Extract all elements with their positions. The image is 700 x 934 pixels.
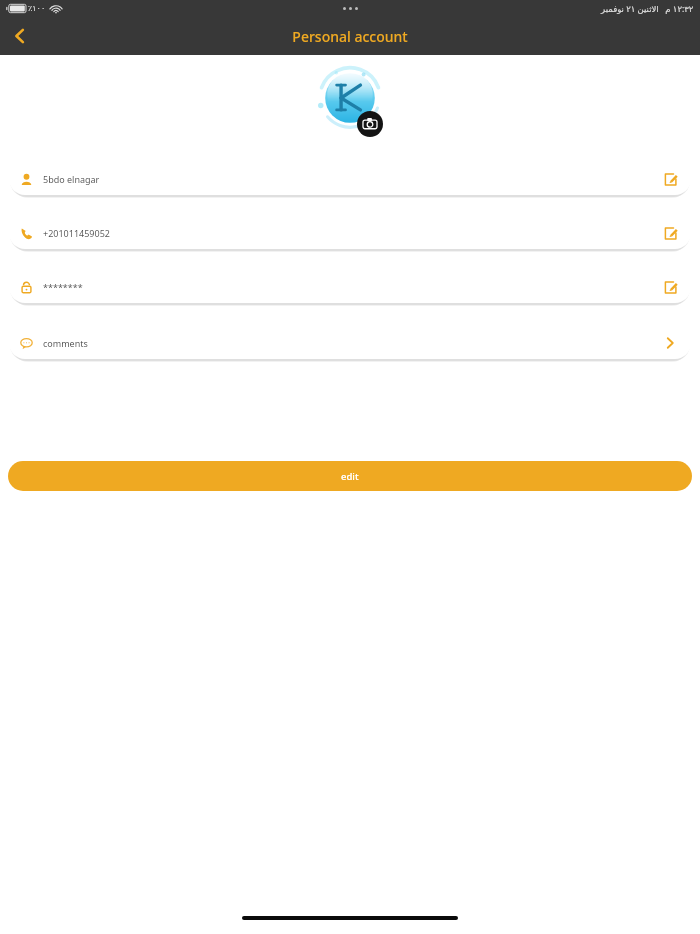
button[interactable]: Change profile photo [311,67,389,139]
button[interactable]: Back [0,17,40,55]
staticText: ٪١٠٠ [28,4,46,13]
button[interactable]: 5bdo elnagar [9,163,691,195]
button[interactable]: +201011459052 [9,217,691,249]
staticText: ١٢:٣٢ م الاثنين ٢١ نوفمبر [601,3,694,15]
button[interactable]: comments [9,327,691,359]
staticText: 5bdo elnagar [43,173,660,185]
staticText: ******** [43,281,660,293]
staticText: +201011459052 [43,227,660,239]
button[interactable]: Edit +201011459052 [660,223,680,243]
button[interactable]: Open comments [660,333,680,353]
button[interactable]: Edit 5bdo elnagar [660,169,680,189]
staticText: comments [43,337,660,349]
button[interactable]: edit [8,461,692,491]
button[interactable]: ******** [9,271,691,303]
staticText: Personal account [292,27,408,46]
button[interactable]: Edit ******** [660,277,680,297]
staticText: edit [341,470,359,483]
